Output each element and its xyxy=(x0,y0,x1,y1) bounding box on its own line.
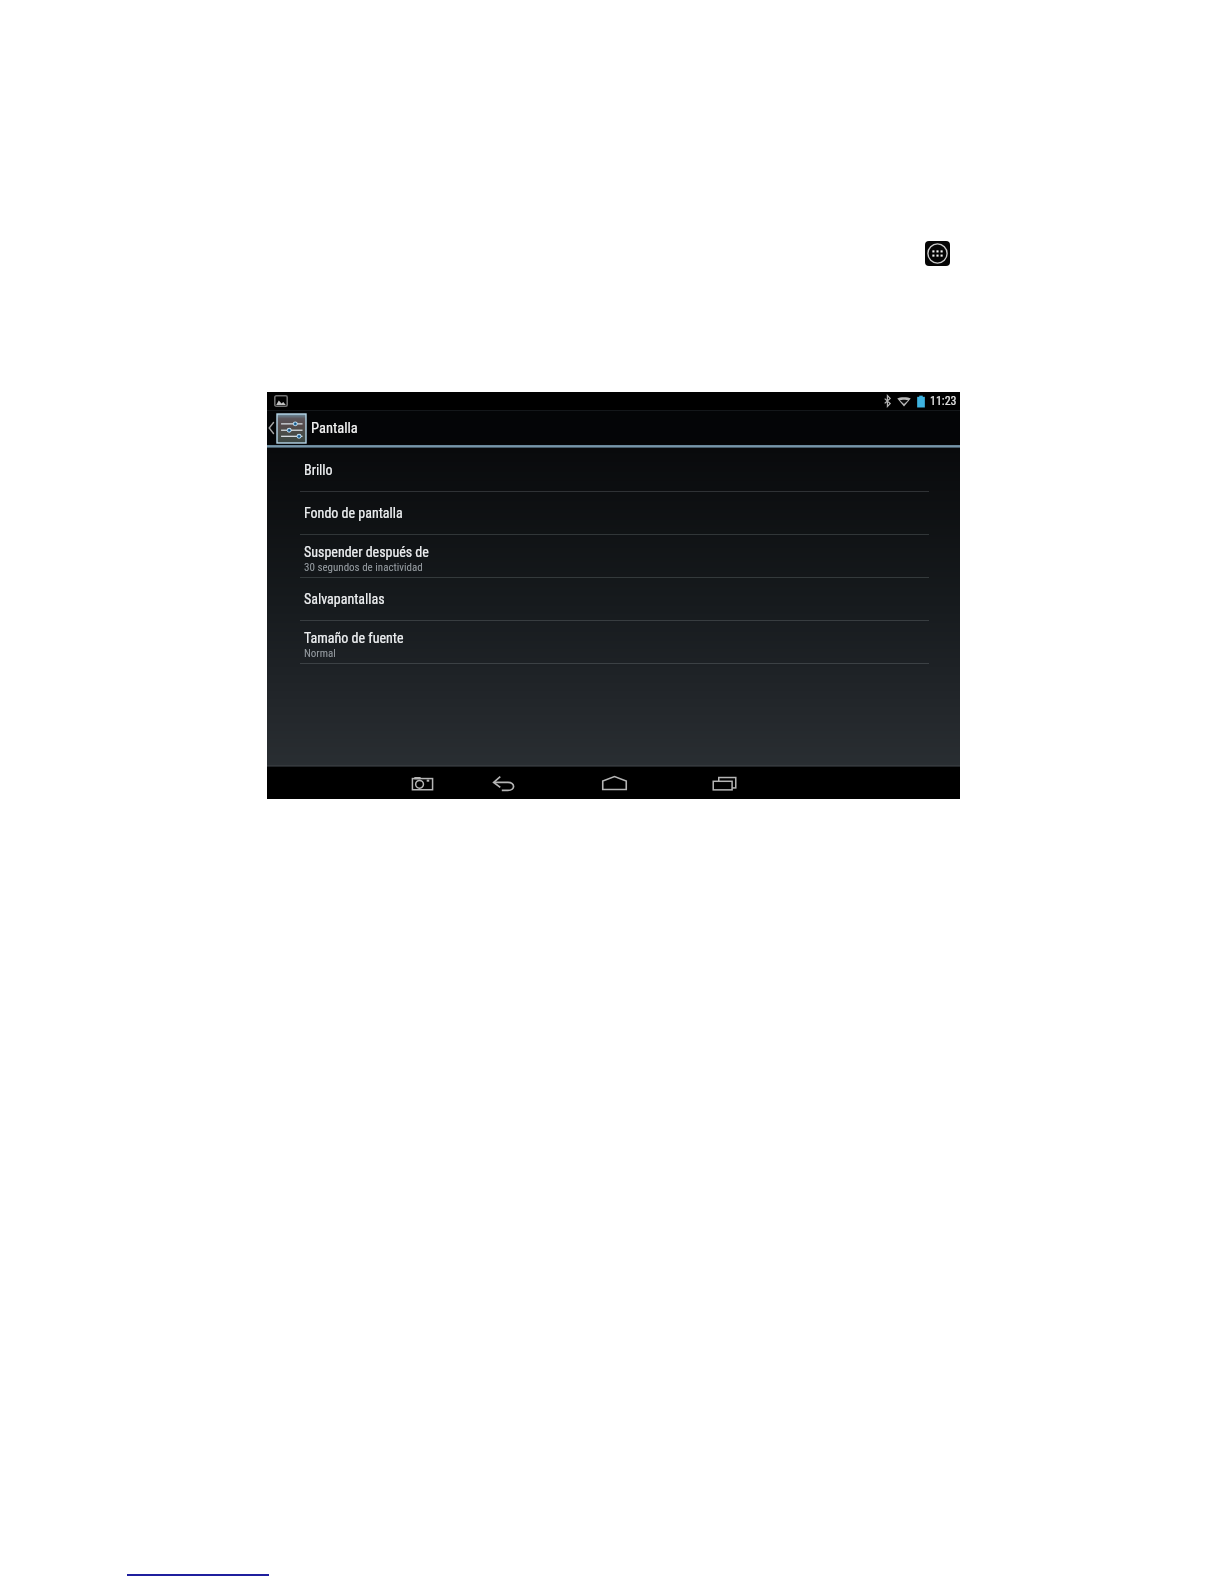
button[interactable]: Recent apps xyxy=(695,767,753,799)
staticText: Suspender después de xyxy=(304,544,429,560)
staticText: 30 segundos de inactividad xyxy=(304,561,423,574)
button[interactable]: Tamaño de fuente xyxy=(267,621,960,664)
button[interactable]: Screenshot xyxy=(393,767,451,799)
staticText: Brillo xyxy=(304,462,333,478)
staticText: Normal xyxy=(304,647,336,660)
button[interactable]: Brillo xyxy=(267,449,960,492)
staticText: Salvapantallas xyxy=(304,591,385,607)
staticText: 11:23 xyxy=(930,394,957,408)
button[interactable]: Fondo de pantalla xyxy=(267,492,960,535)
button[interactable]: Salvapantallas xyxy=(267,578,960,621)
button[interactable]: Suspender después de xyxy=(267,535,960,578)
staticText: Tamaño de fuente xyxy=(304,630,404,646)
button[interactable]: All apps xyxy=(925,241,950,266)
button[interactable]: Home xyxy=(585,767,643,799)
button[interactable]: Pantalla xyxy=(267,411,358,445)
staticText: Fondo de pantalla xyxy=(304,505,403,521)
button[interactable]: Back xyxy=(475,767,533,799)
staticText: Pantalla xyxy=(311,420,358,437)
